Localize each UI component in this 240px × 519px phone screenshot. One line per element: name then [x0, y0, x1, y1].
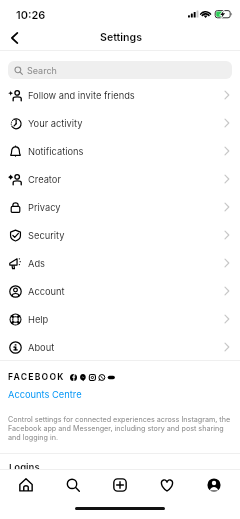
staticText: Privacy	[28, 202, 61, 213]
button[interactable]: Follow and invite friends	[0, 81, 240, 109]
staticText: Your activity	[28, 118, 83, 129]
staticText: Control settings for connected experienc…	[8, 415, 234, 442]
staticText: Creator	[28, 174, 61, 185]
button[interactable]: Home	[3, 470, 49, 496]
button[interactable]: Your activity	[0, 109, 240, 137]
staticText: Help	[28, 314, 49, 325]
staticText: Settings	[100, 31, 143, 44]
staticText: 10:26	[16, 8, 46, 21]
button[interactable]: Privacy	[0, 193, 240, 221]
button[interactable]: Activity	[144, 470, 190, 496]
staticText: Notifications	[28, 146, 84, 157]
button[interactable]: Search	[8, 61, 232, 79]
button[interactable]: Creator	[0, 165, 240, 193]
staticText: Search	[27, 65, 57, 76]
button[interactable]: Help	[0, 305, 240, 333]
button[interactable]: Ads	[0, 249, 240, 277]
button[interactable]: Security	[0, 221, 240, 249]
staticText: FACEBOOK	[8, 372, 65, 382]
button[interactable]: About	[0, 333, 240, 361]
button[interactable]: Create	[97, 470, 143, 496]
button[interactable]: Notifications	[0, 137, 240, 165]
staticText: About	[28, 342, 55, 353]
staticText: Account	[28, 286, 65, 297]
button[interactable]: Back	[0, 26, 32, 50]
button[interactable]: Search	[50, 470, 96, 496]
button[interactable]: Profile	[191, 470, 237, 496]
button[interactable]: Accounts Centre	[8, 389, 82, 400]
staticText: Security	[28, 230, 65, 241]
button[interactable]: Account	[0, 277, 240, 305]
staticText: Logins	[9, 462, 40, 473]
staticText: Ads	[28, 258, 46, 269]
staticText: Follow and invite friends	[28, 90, 135, 101]
